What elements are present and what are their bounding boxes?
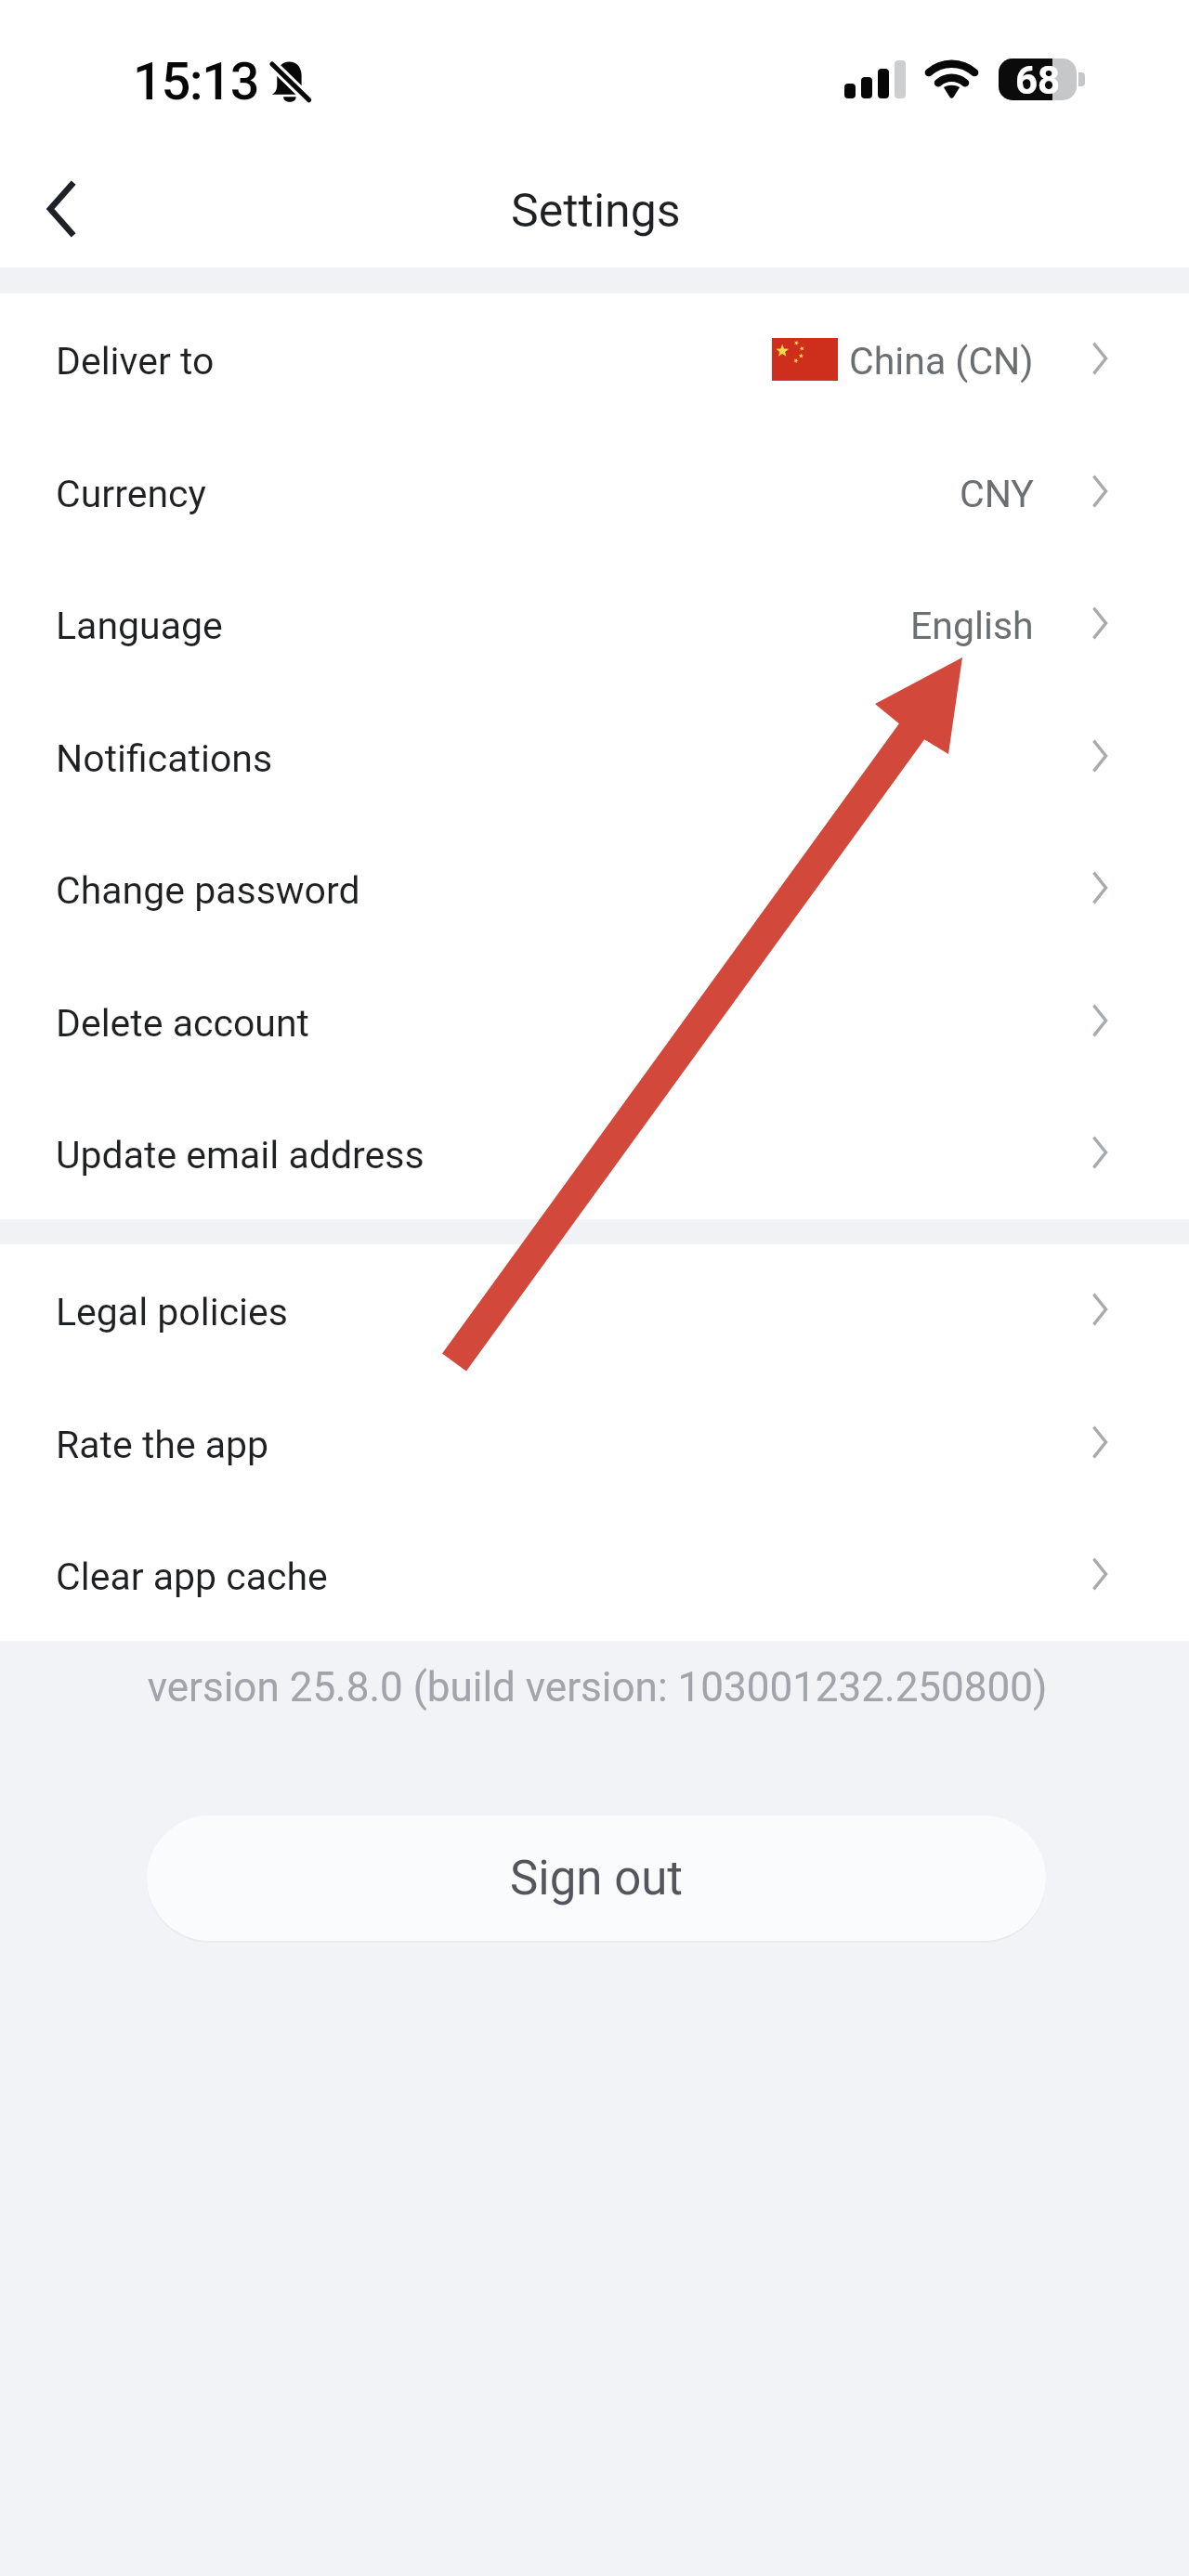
staticText: 68	[1015, 58, 1061, 103]
staticText: Rate the app	[56, 1423, 269, 1467]
staticText: version 25.8.0 (build version: 103001232…	[3, 1663, 1189, 1711]
button[interactable]: Legal policies	[0, 1244, 1189, 1376]
button[interactable]: Clear app cache	[0, 1509, 1189, 1641]
staticText: Deliver to	[56, 339, 215, 384]
button[interactable]: Delete account	[0, 955, 1189, 1087]
button[interactable]: Update email address	[0, 1087, 1189, 1219]
staticText: Update email address	[56, 1133, 425, 1177]
staticText: Delete account	[56, 1001, 309, 1046]
button[interactable]: Back	[7, 158, 115, 266]
button[interactable]: Change password	[0, 823, 1189, 955]
staticText: Change password	[56, 868, 360, 913]
button[interactable]: Notifications	[0, 690, 1189, 823]
button[interactable]: Deliver to	[0, 293, 1189, 425]
staticText: China (CN)	[849, 339, 1034, 384]
button[interactable]: Currency	[0, 425, 1189, 558]
button[interactable]: Rate the app	[0, 1376, 1189, 1509]
staticText: English	[910, 604, 1034, 648]
staticText: Sign out	[510, 1851, 684, 1906]
staticText: Legal policies	[56, 1290, 288, 1334]
staticText: CNY	[960, 472, 1034, 516]
staticText: Notifications	[56, 736, 273, 781]
staticText: Language	[56, 604, 223, 648]
staticText: Clear app cache	[56, 1555, 328, 1599]
button[interactable]: Sign out	[147, 1815, 1046, 1941]
button[interactable]: Language	[0, 558, 1189, 690]
staticText: 15:13	[133, 51, 259, 112]
staticText: Currency	[56, 472, 206, 516]
staticText: Settings	[511, 184, 681, 239]
